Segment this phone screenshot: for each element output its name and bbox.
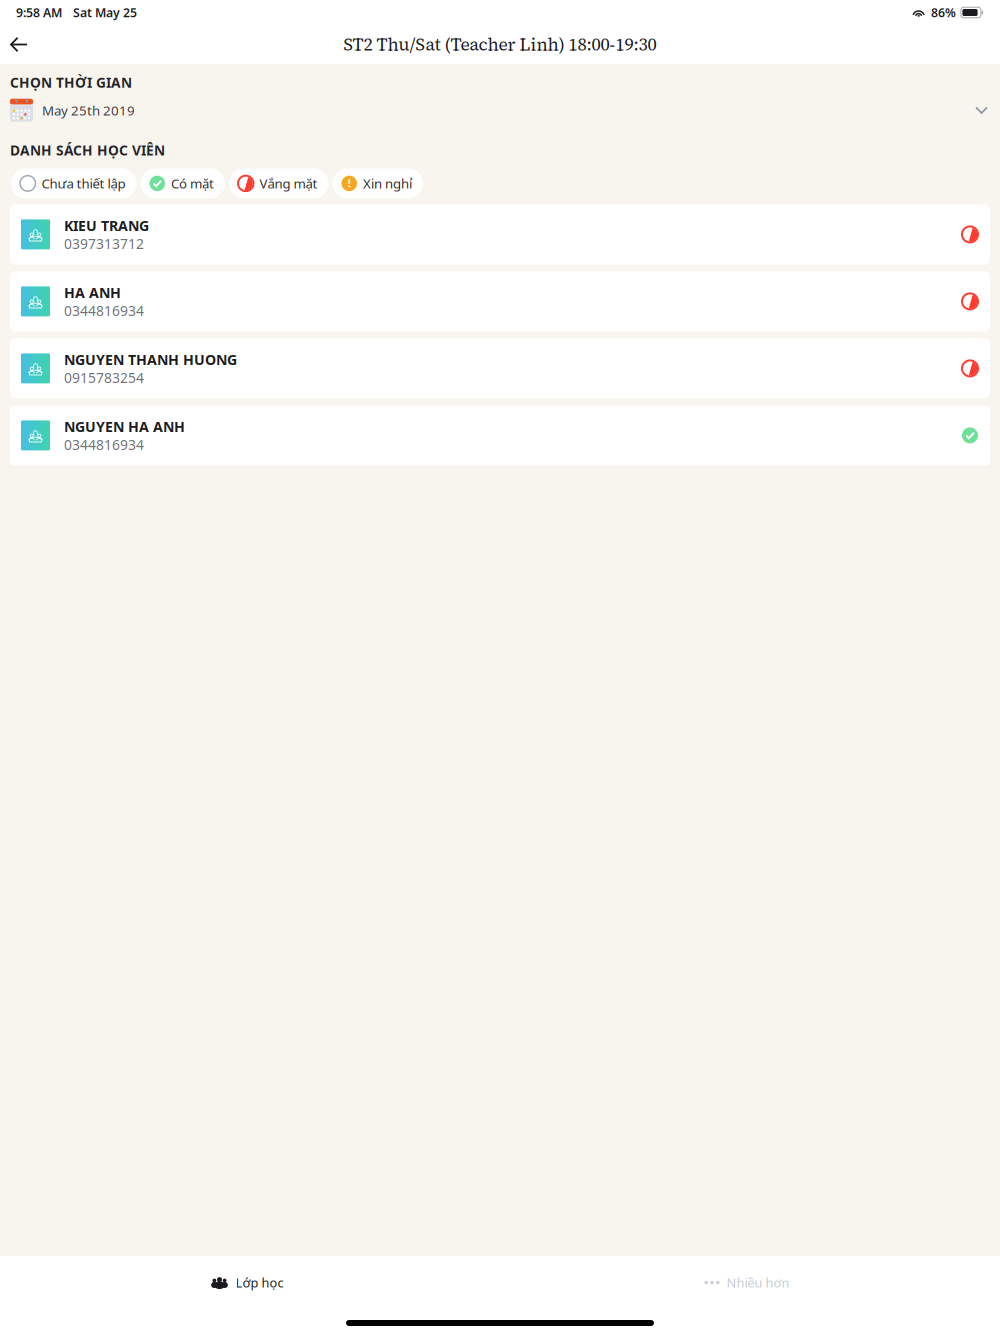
staticText: DANH SÁCH HỌC VIÊN [10,141,165,159]
button[interactable]: Có mặt [140,168,225,198]
button[interactable]: Xin nghỉ [332,168,423,198]
staticText: KIEU TRANG [64,216,149,235]
staticText: Sat May 25 [73,4,137,21]
staticText: Có mặt [171,174,214,192]
button[interactable]: Vắng mặt [229,168,328,198]
button[interactable]: Nhiều hơn [704,1269,789,1295]
staticText: 0344816934 [64,435,144,454]
button[interactable]: NGUYEN THANH HUONG [10,338,990,398]
staticText: ST2 Thu/Sat (Teacher Linh) 18:00-19:30 [343,33,656,56]
button[interactable]: HA ANH [10,271,990,331]
button[interactable]: KIEU TRANG [10,204,990,264]
staticText: Vắng mặt [259,174,317,192]
staticText: 0915783254 [64,368,144,387]
staticText: Chưa thiết lập [41,174,125,192]
staticText: Nhiều hơn [726,1274,789,1291]
staticText: Xin nghỉ [363,174,412,192]
staticText: NGUYEN HA ANH [64,417,185,436]
button[interactable]: Chưa thiết lập [11,168,136,198]
staticText: 86% [931,4,956,21]
button[interactable]: Lớp học [210,1269,283,1295]
button[interactable]: NGUYEN HA ANH [10,405,990,465]
staticText: CHỌN THỜI GIAN [10,73,132,92]
staticText: NGUYEN THANH HUONG [64,350,237,369]
staticText: 9:58 AM [16,4,62,21]
button[interactable]: Back [0,25,38,64]
button[interactable]: May 25th 2019 [0,98,1000,123]
staticText: May 25th 2019 [42,101,135,119]
staticText: HA ANH [64,283,121,302]
staticText: 0397313712 [64,234,144,253]
staticText: 0344816934 [64,301,144,320]
staticText: Lớp học [235,1274,283,1291]
